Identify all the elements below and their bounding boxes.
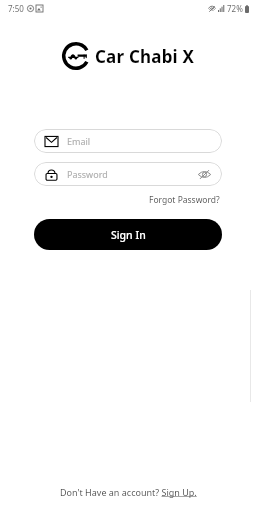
staticText: Forgot Password?	[149, 194, 220, 206]
staticText: 72%	[227, 3, 243, 14]
button[interactable]: Email	[34, 129, 222, 153]
staticText: Password	[67, 168, 198, 180]
other: Email	[45, 135, 58, 148]
button[interactable]: Don't Have an account? Sign Up.	[57, 484, 200, 500]
button[interactable]: Password	[34, 162, 222, 186]
staticText: 7:50	[8, 3, 24, 14]
staticText: Sign In	[111, 228, 146, 242]
staticText: Email	[67, 135, 211, 147]
other: Password	[45, 168, 58, 181]
button[interactable]: Sign In	[34, 219, 222, 250]
button[interactable]: Forgot Password?	[147, 193, 222, 207]
button[interactable]: Show password	[198, 168, 211, 181]
staticText: Don't Have an account? Sign Up.	[60, 486, 197, 498]
staticText: Car Chabi X	[95, 45, 195, 68]
